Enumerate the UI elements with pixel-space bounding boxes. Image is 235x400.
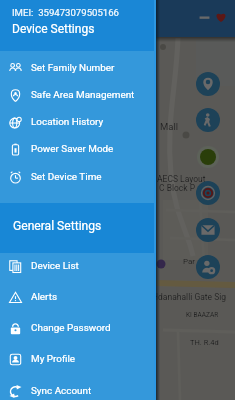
staticText: Hdanahalli Gate Sig — [152, 292, 227, 302]
button[interactable]: Change Password — [0, 314, 154, 342]
staticText: Power Saver Mode — [31, 143, 114, 155]
staticText: Set Device Time — [31, 171, 102, 183]
button[interactable]: Minimize — [198, 11, 211, 24]
staticText: Par — [183, 257, 196, 266]
staticText: TH. R.4d — [190, 338, 219, 347]
staticText: Sync Account — [31, 385, 92, 397]
staticText: Set Family Number — [31, 62, 115, 74]
button[interactable]: My Profile — [0, 345, 154, 373]
button[interactable]: Alerts — [0, 283, 154, 311]
button[interactable]: Profile settings — [196, 255, 220, 279]
staticText: IMEI: 359473079505166 — [12, 7, 120, 18]
staticText: KI BAAZAR — [186, 311, 219, 319]
staticText: C Block P — [159, 183, 196, 193]
button[interactable]: Center map — [196, 181, 220, 205]
button[interactable]: Track walking — [196, 108, 220, 132]
staticText: Device Settings — [12, 22, 95, 36]
button[interactable]: Set Family Number — [0, 54, 154, 82]
staticText: Location History — [31, 116, 104, 128]
button[interactable]: Messages — [196, 218, 220, 242]
button[interactable]: Location History — [0, 108, 154, 136]
button[interactable]: Power Saver Mode — [0, 135, 154, 163]
staticText: Alerts — [31, 291, 58, 303]
staticText: Change Password — [31, 322, 111, 334]
staticText: Safe Area Management — [31, 89, 135, 101]
staticText: Mall — [160, 121, 179, 132]
staticText: General Settings — [13, 219, 102, 233]
staticText: My Profile — [31, 353, 76, 365]
button[interactable]: Set Device Time — [0, 163, 154, 191]
button[interactable]: Favorite — [214, 10, 228, 24]
staticText: AECS Layout — [157, 174, 206, 184]
button[interactable]: Device status — [197, 146, 219, 168]
staticText: Device List — [31, 260, 79, 272]
button[interactable]: Locate device — [196, 72, 220, 96]
button[interactable]: Device List — [0, 252, 154, 280]
button[interactable]: Sync Account — [0, 377, 154, 400]
button[interactable]: Safe Area Management — [0, 81, 154, 109]
